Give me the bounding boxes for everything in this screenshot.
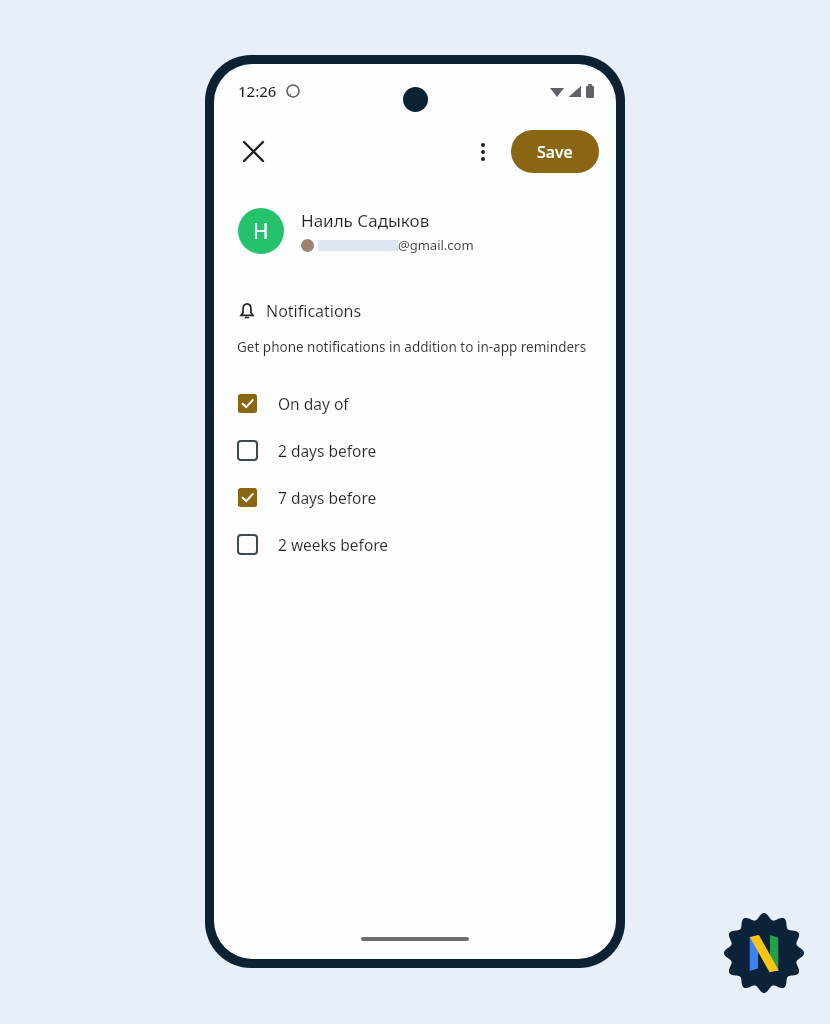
- staticText: Наиль Садыков: [301, 209, 430, 232]
- staticText: Save: [537, 141, 573, 163]
- staticText: Notifications: [266, 300, 362, 322]
- staticText: On day of: [278, 393, 349, 414]
- button[interactable]: H: [214, 204, 616, 258]
- button[interactable]: More options: [463, 132, 503, 172]
- staticText: 2 days before: [278, 440, 377, 461]
- staticText: 12:26: [238, 81, 277, 101]
- button[interactable]: 2 weeks before: [214, 521, 616, 568]
- button[interactable]: 2 days before: [214, 427, 616, 474]
- button[interactable]: 7 days before: [214, 474, 616, 521]
- staticText: Get phone notifications in addition to i…: [237, 338, 587, 356]
- button[interactable]: On day of: [214, 380, 616, 427]
- button[interactable]: Close: [231, 129, 275, 173]
- button[interactable]: Save: [511, 130, 599, 173]
- staticText: H: [253, 217, 269, 246]
- staticText: 2 weeks before: [278, 534, 389, 555]
- staticText: @gmail.com: [398, 236, 474, 254]
- staticText: 7 days before: [278, 487, 377, 508]
